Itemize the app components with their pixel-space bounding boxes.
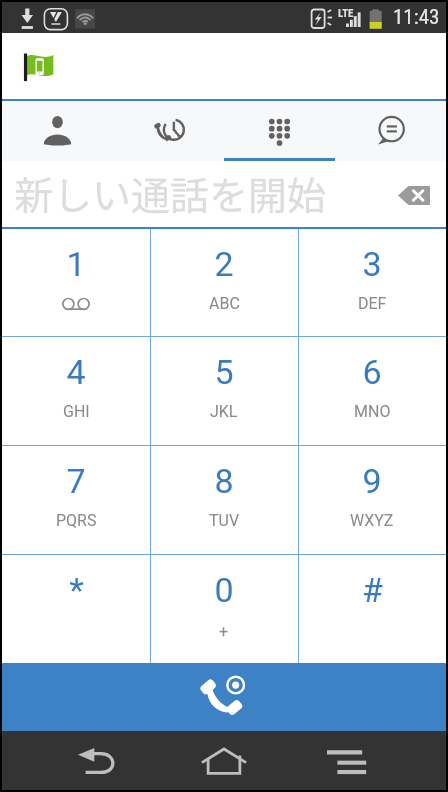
staticText: TUV (209, 511, 240, 530)
button[interactable]: Key # (298, 555, 446, 663)
button[interactable]: Contacts (2, 101, 113, 161)
button[interactable]: Key 9 (298, 446, 446, 554)
button[interactable]: Key 3 (298, 229, 446, 336)
staticText: 8 (214, 461, 234, 501)
staticText: 1 (66, 244, 86, 284)
staticText: 6 (362, 352, 382, 392)
button[interactable]: Call (2, 663, 446, 731)
staticText: JKL (210, 402, 238, 421)
staticText: 新しい通話を開始 (14, 165, 327, 221)
staticText: 3 (362, 244, 382, 284)
staticText: DEF (358, 294, 387, 313)
button[interactable]: Key 5 (150, 337, 298, 445)
staticText: * (69, 570, 84, 610)
button[interactable]: Key 0 (150, 555, 298, 663)
button[interactable]: Home (186, 731, 262, 790)
button[interactable]: Recent apps (309, 731, 385, 790)
staticText: PQRS (56, 511, 97, 530)
button[interactable]: Key 2 (150, 229, 298, 336)
button[interactable]: App logo (22, 52, 54, 82)
button[interactable]: Backspace (394, 175, 434, 215)
staticText: + (219, 622, 229, 641)
button[interactable]: Messages (335, 101, 446, 161)
button[interactable]: Key 4 (2, 337, 150, 445)
button[interactable]: Key 6 (298, 337, 446, 445)
staticText: 5 (214, 352, 234, 392)
staticText: 9 (362, 461, 382, 501)
staticText: LTE (338, 7, 354, 20)
staticText: 11:43 (393, 5, 440, 30)
staticText: MNO (354, 402, 391, 421)
staticText: 2 (214, 244, 234, 284)
staticText: 0 (214, 570, 234, 610)
staticText: ABC (209, 294, 240, 313)
button[interactable]: Key * (2, 555, 150, 663)
staticText: GHI (63, 402, 90, 421)
button[interactable]: Back (59, 731, 135, 790)
button[interactable]: Key 8 (150, 446, 298, 554)
button[interactable]: Dialpad (224, 101, 335, 161)
staticText: 7 (66, 461, 86, 501)
staticText: WXYZ (350, 511, 394, 530)
staticText: 4 (66, 352, 86, 392)
button[interactable]: Call history (113, 101, 224, 161)
button[interactable]: Key 1 (2, 229, 150, 336)
button[interactable]: Key 7 (2, 446, 150, 554)
staticText: # (362, 570, 383, 610)
